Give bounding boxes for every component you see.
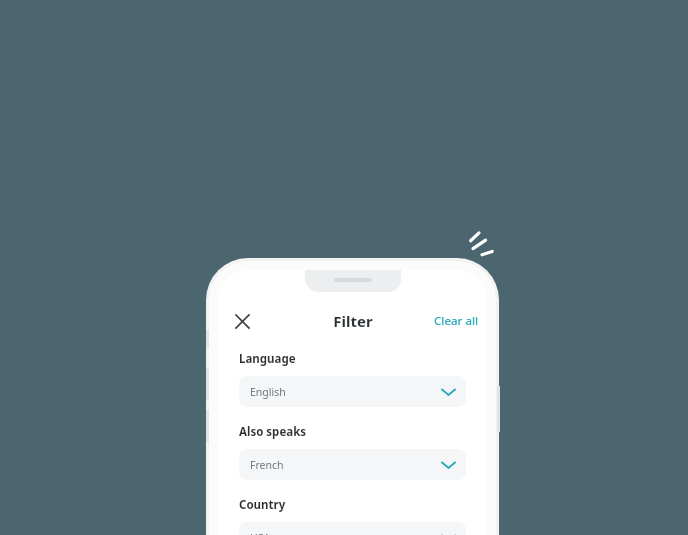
staticText: Language	[239, 351, 296, 367]
staticText: English	[250, 385, 442, 399]
button[interactable]: French	[239, 449, 466, 480]
staticText: Country	[239, 497, 286, 513]
button[interactable]: USA	[239, 522, 466, 535]
button[interactable]: Clear all	[426, 308, 487, 334]
staticText: USA	[250, 531, 442, 535]
button[interactable]: English	[239, 376, 466, 407]
staticText: Filter	[333, 311, 373, 331]
staticText: Clear all	[434, 313, 479, 329]
staticText: Also speaks	[239, 424, 307, 440]
button[interactable]: Close	[226, 305, 258, 337]
staticText: French	[250, 458, 442, 472]
